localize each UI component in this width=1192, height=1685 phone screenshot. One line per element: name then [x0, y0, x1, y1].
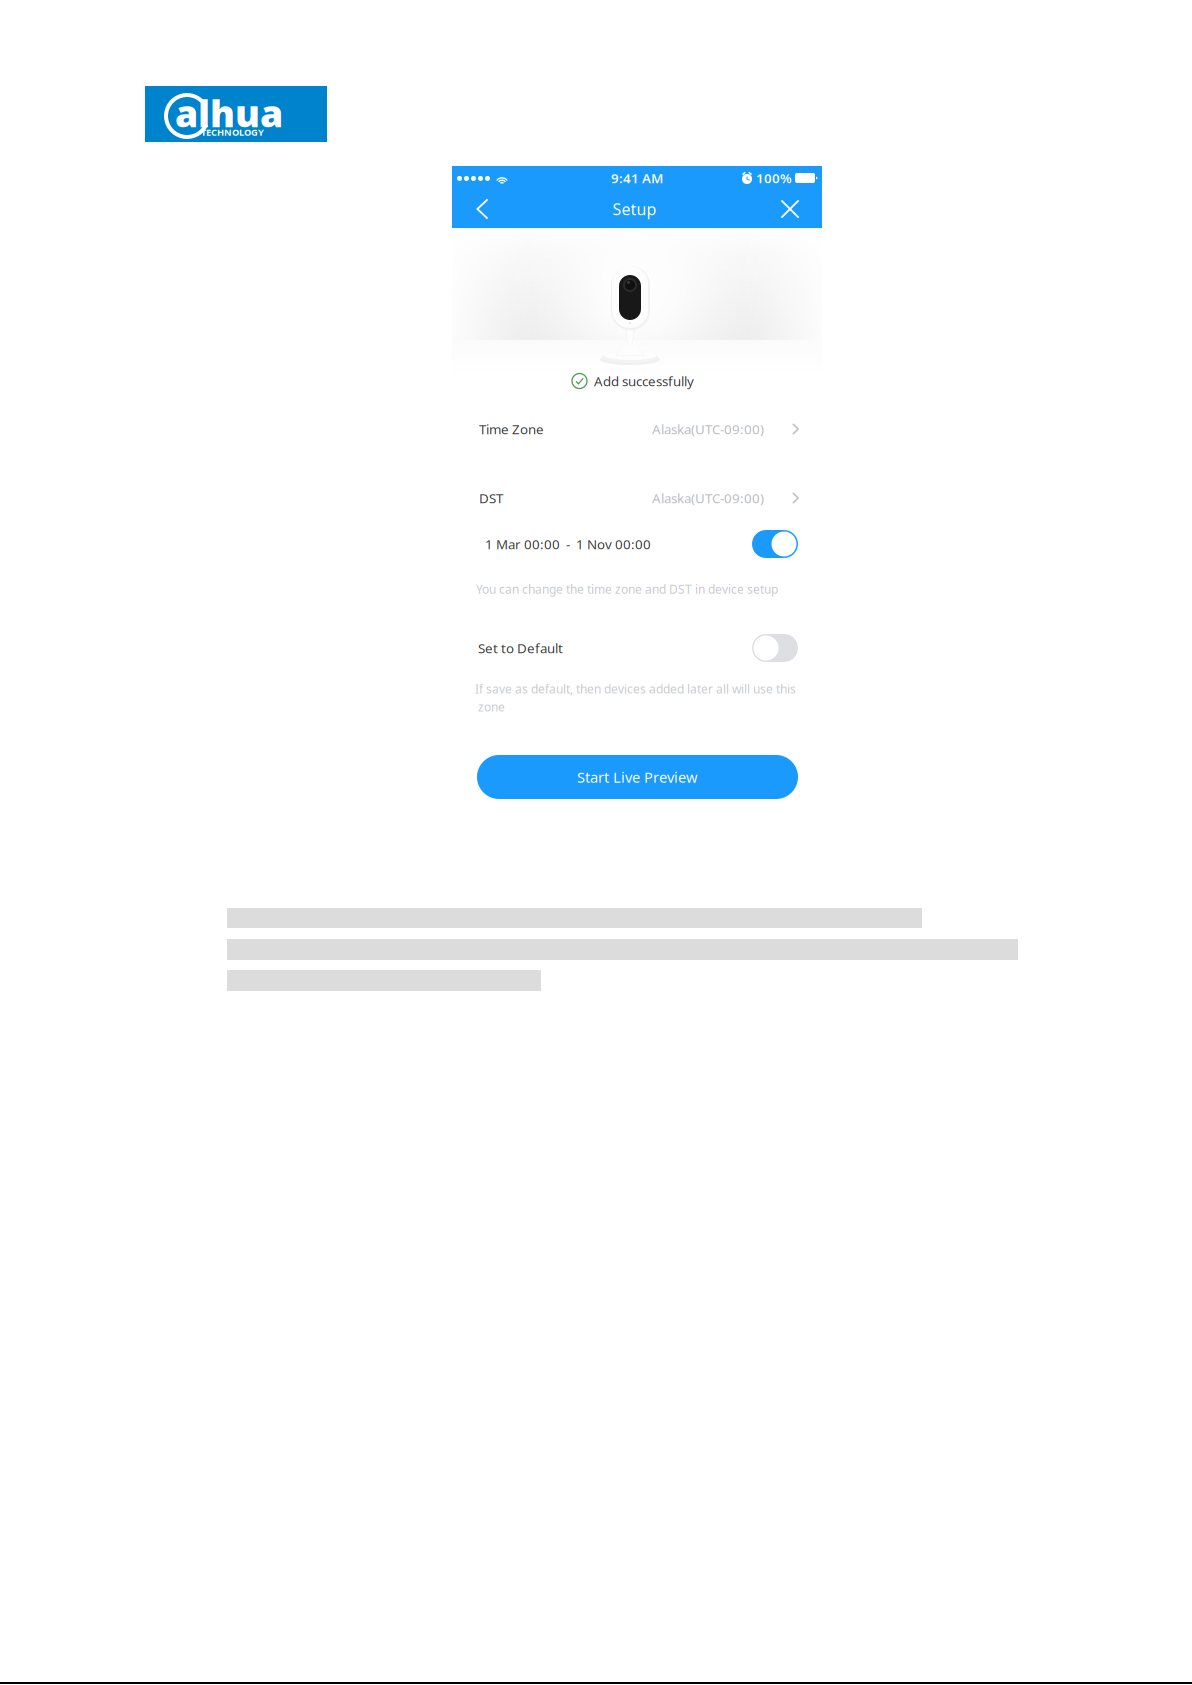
staticText: You can change the time zone and DST in … — [476, 581, 778, 597]
staticText: TECHNOLOGY — [201, 126, 264, 138]
staticText: alhua — [175, 88, 283, 138]
staticText: Alaska(UTC-09:00) — [652, 489, 764, 507]
button[interactable]: DST — [452, 485, 822, 511]
staticText: Setup — [612, 198, 656, 220]
staticText: Alaska(UTC-09:00) — [652, 420, 764, 438]
staticText: 9:41 AM — [611, 169, 663, 187]
button[interactable]: Back — [461, 190, 504, 228]
staticText: 100% — [756, 169, 792, 187]
button[interactable]: Daylight Saving Time — [752, 530, 798, 558]
button[interactable]: Start Live Preview — [477, 755, 798, 799]
staticText: Time Zone — [479, 420, 544, 438]
button[interactable]: Close — [767, 190, 813, 228]
staticText: zone — [475, 699, 505, 715]
staticText: DST — [479, 489, 503, 507]
button[interactable]: Set to Default — [752, 634, 798, 662]
staticText: Add successfully — [594, 372, 694, 390]
staticText: 1 Mar 00:00 - 1 Nov 00:00 — [485, 535, 651, 553]
staticText: If save as default, then devices added l… — [475, 681, 796, 697]
staticText: Start Live Preview — [577, 767, 698, 787]
button[interactable]: Time Zone — [452, 416, 822, 442]
staticText: Set to Default — [478, 639, 563, 657]
